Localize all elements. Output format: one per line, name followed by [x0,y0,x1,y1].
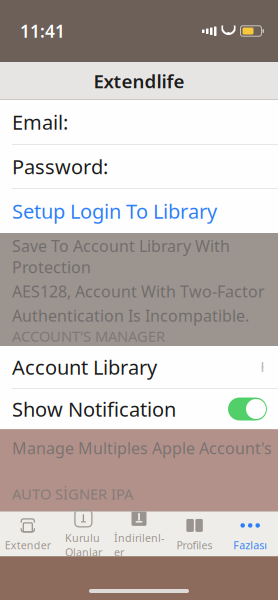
button[interactable]: Show Notification [0,388,278,429]
button[interactable]: Kurulu Olanlar [56,511,111,556]
staticText: Setup Login To Library [12,198,217,224]
staticText: Show Notification [12,396,176,422]
staticText: Kurulu Olanlar [65,531,102,559]
staticText: Password: [12,153,108,180]
staticText: Save To Account Library With Protection [12,235,230,278]
staticText: Email: [12,109,68,135]
staticText: İndirilenler [114,531,164,559]
button[interactable]: Extender [0,511,56,556]
button[interactable]: Profiles [167,511,222,556]
staticText: Fazlası [233,538,267,552]
button[interactable]: İndirilenler [111,511,167,556]
button[interactable]: Fazlası [222,511,278,556]
button[interactable]: Email: [0,100,278,144]
staticText: Manage Multiples Apple Account's [12,437,272,459]
staticText: AUTO SİGNER IPA [12,484,133,503]
button[interactable]: Account Library [0,346,278,388]
staticText: Account Library [12,354,157,380]
button[interactable]: Password: [0,144,278,188]
staticText: Profiles [177,538,213,552]
staticText: ACCOUNT'S MANAGER [12,326,165,346]
staticText: Extendlife [93,69,184,93]
staticText: 11:41 [20,19,65,42]
staticText: AES128, Account With Two-Factor [12,281,265,302]
staticText: Authentication Is Incompatible. [12,305,249,326]
button[interactable]: Setup Login To Library [0,189,278,233]
staticText: Extender [5,538,51,552]
